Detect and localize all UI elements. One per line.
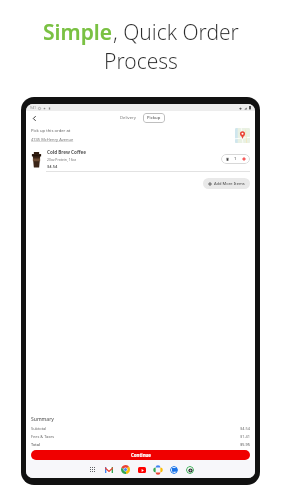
staticText: Delivery [120, 115, 136, 121]
staticText: $1.41 [240, 434, 250, 439]
staticText: Fees & Taxes [31, 434, 55, 439]
staticText: Simple [43, 18, 113, 47]
staticText: Process [104, 47, 178, 76]
button[interactable]: Pickup [143, 113, 165, 123]
button[interactable]: Add one [241, 156, 247, 162]
button[interactable]: Camera [185, 465, 194, 474]
button[interactable]: Cold Brew Coffee [26, 147, 255, 171]
staticText: Cold Brew Coffee [47, 149, 86, 155]
staticText: $4.54 [47, 164, 58, 169]
staticText: Subtotal [31, 426, 47, 431]
staticText: $5.95 [240, 442, 250, 447]
button[interactable]: YouTube [137, 465, 146, 474]
button[interactable]: Photos [153, 465, 162, 474]
staticText: 4745 McHenry Avenue [31, 137, 74, 142]
button[interactable]: Continue [31, 450, 250, 460]
staticText: 1 [234, 156, 237, 162]
button[interactable]: 4745 McHenry Avenue [31, 137, 74, 142]
button[interactable]: Messages [169, 465, 178, 474]
staticText: 20oz Protein, 16oz [47, 157, 77, 162]
staticText: $4.54 [240, 426, 250, 431]
button[interactable]: Back [29, 113, 40, 124]
staticText: Continue [131, 452, 151, 458]
staticText: , Quick Order [113, 18, 239, 47]
button[interactable]: Add More Items [203, 178, 250, 189]
button[interactable]: Chrome [120, 464, 130, 474]
button[interactable]: All apps [88, 465, 97, 474]
staticText: Pickup [147, 115, 161, 121]
staticText: Total [31, 442, 41, 447]
staticText: 9:41 [30, 106, 36, 110]
button[interactable]: Gmail [104, 465, 113, 474]
staticText: Pick up this order at [31, 128, 71, 134]
staticText: Summary [31, 416, 54, 423]
button[interactable]: Open map [235, 128, 250, 143]
button[interactable]: Remove item [224, 156, 230, 162]
staticText: Add More Items [214, 181, 245, 186]
button[interactable]: Delivery [116, 113, 140, 123]
